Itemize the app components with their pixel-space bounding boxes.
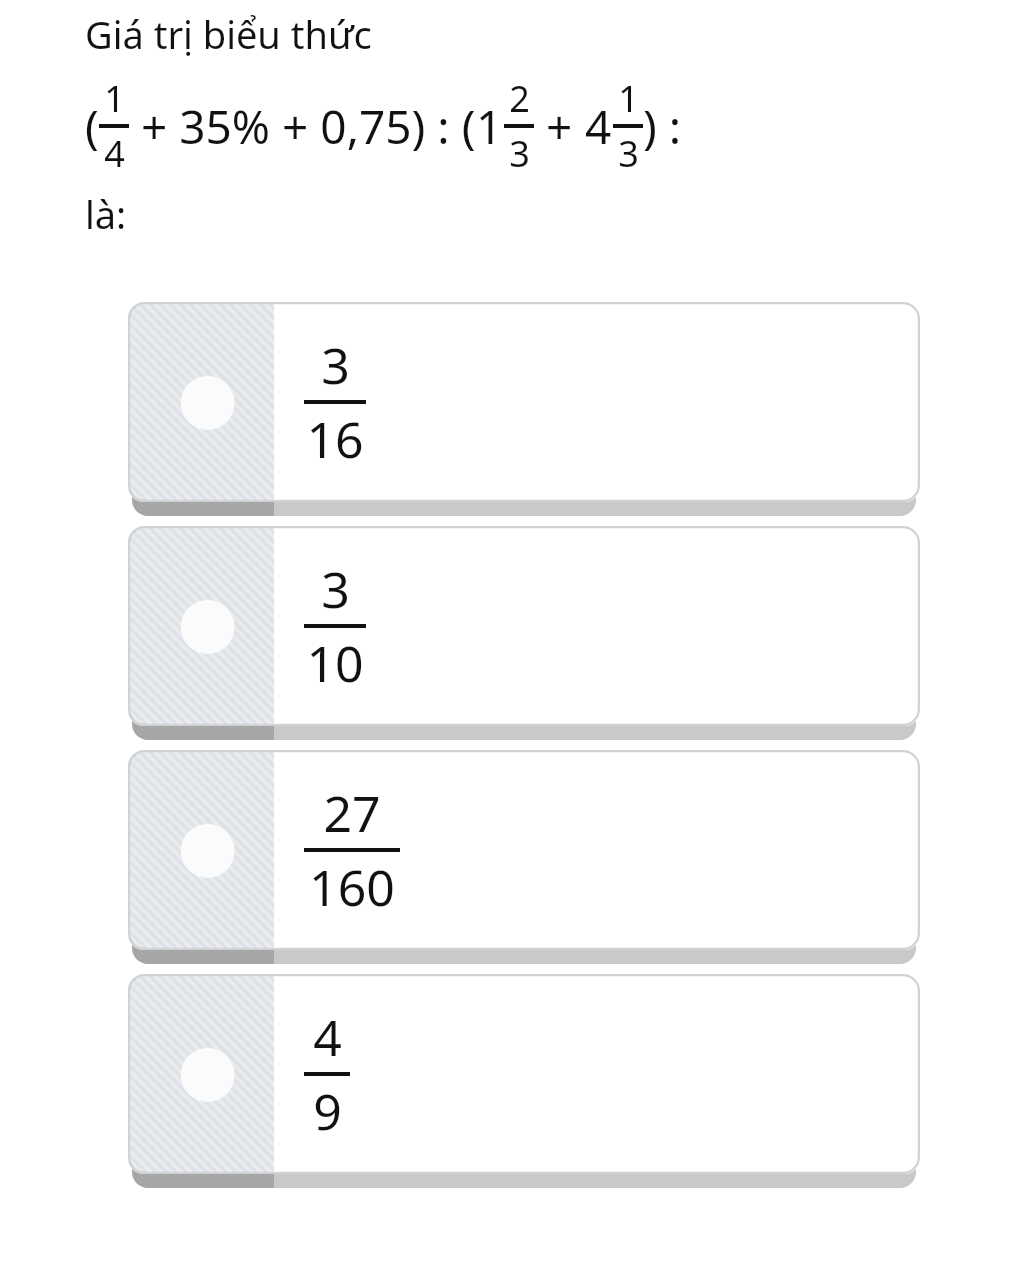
staticText: 4: [313, 1003, 342, 1071]
staticText: (: [85, 95, 99, 158]
staticText: 9: [313, 1077, 342, 1145]
staticText: 10: [306, 629, 364, 697]
button[interactable]: 3: [128, 302, 920, 516]
staticText: 1: [104, 74, 125, 123]
staticText: 2: [509, 74, 530, 123]
staticText: 4: [585, 95, 612, 158]
staticText: ) :: [643, 95, 682, 158]
staticText: + 35% + 0,75) : (: [129, 95, 476, 158]
staticText: 3: [618, 129, 639, 178]
staticText: 3: [321, 555, 350, 623]
button[interactable]: 3: [128, 526, 920, 740]
staticText: Giá trị biểu thức: [85, 8, 372, 60]
staticText: 3: [509, 129, 530, 178]
staticText: 1: [476, 95, 503, 158]
staticText: +: [534, 95, 585, 158]
staticText: 1: [618, 74, 639, 123]
button[interactable]: 27: [128, 750, 920, 964]
staticText: 27: [323, 779, 381, 847]
staticText: 3: [321, 331, 350, 399]
staticText: 160: [309, 853, 395, 921]
button[interactable]: 4: [128, 974, 920, 1188]
staticText: 16: [306, 405, 364, 473]
staticText: 4: [104, 129, 125, 178]
staticText: là:: [85, 188, 127, 240]
